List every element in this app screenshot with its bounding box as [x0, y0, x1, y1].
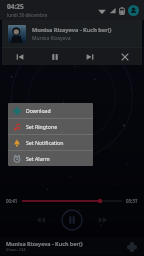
button[interactable]: Seek	[22, 198, 122, 204]
staticText: Munisa Rizayeva	[32, 35, 71, 42]
staticText: Munisa Rizayeva - Kuch ber()	[32, 26, 112, 34]
staticText: Munisa Rizayeva - Kuch ber()	[6, 240, 83, 247]
staticText: Views: 234	[6, 247, 26, 252]
staticText: 04:25	[7, 2, 24, 11]
staticText: 00:41	[6, 198, 18, 204]
staticText: Set Ringtone	[26, 123, 58, 130]
button[interactable]: Munisa Rizayeva - Kuch ber()	[0, 237, 144, 255]
staticText: Set Notification	[26, 139, 64, 146]
button[interactable]: Previous	[2, 48, 37, 65]
staticText: Set Alarm	[26, 155, 50, 162]
button[interactable]: Forward	[93, 210, 113, 230]
button[interactable]: Close	[107, 48, 142, 65]
button[interactable]: Set Ringtone	[8, 119, 93, 134]
button[interactable]: Pause	[37, 48, 72, 65]
button[interactable]: Munisa Rizayeva - Kuch ber()	[2, 20, 142, 47]
button[interactable]: Rewind	[31, 210, 51, 230]
staticText: Download	[26, 107, 51, 114]
button[interactable]: Next	[72, 48, 107, 65]
button[interactable]: Set Alarm	[8, 151, 93, 166]
staticText: lundi 30 décembre	[7, 12, 48, 18]
button[interactable]: Play or pause	[61, 209, 83, 231]
button[interactable]: Download	[8, 103, 93, 118]
staticText: 03:31	[126, 198, 138, 204]
button[interactable]: Download	[125, 240, 138, 253]
button[interactable]: Set Notification	[8, 135, 93, 150]
